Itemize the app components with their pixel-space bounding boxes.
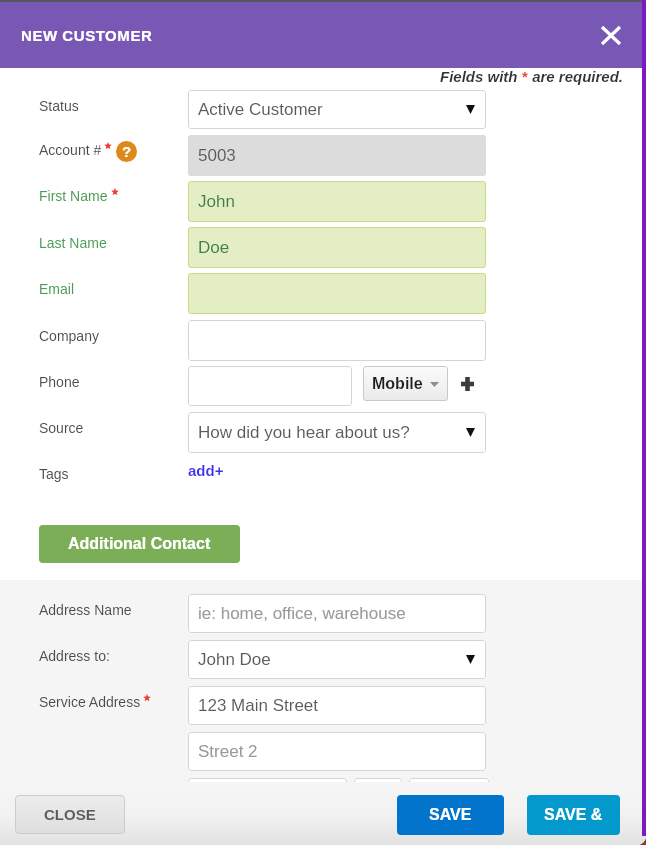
staticText: SAVE xyxy=(429,806,472,824)
staticText: NEW CUSTOMER xyxy=(21,27,153,44)
button[interactable]: John xyxy=(188,181,486,222)
button[interactable]: add+ xyxy=(188,462,224,479)
button[interactable]: SAVE xyxy=(397,795,504,835)
staticText: Status xyxy=(39,98,79,114)
button[interactable]: Additional Contact xyxy=(39,525,240,563)
button[interactable]: John Doe xyxy=(188,640,486,679)
staticText: Account # xyxy=(39,142,102,158)
staticText: SAVE & xyxy=(544,806,603,824)
staticText: 5003 xyxy=(198,146,236,165)
button[interactable] xyxy=(188,366,352,406)
staticText: * xyxy=(522,68,528,85)
staticText: First Name xyxy=(39,188,108,204)
button[interactable] xyxy=(188,320,486,361)
staticText: Phone xyxy=(39,374,80,390)
staticText: are required. xyxy=(528,68,624,85)
button[interactable] xyxy=(188,778,347,813)
button[interactable]: SAVE & xyxy=(527,795,620,835)
button[interactable] xyxy=(354,778,402,813)
staticText: CLOSE xyxy=(44,806,96,823)
button[interactable]: Help xyxy=(116,141,137,162)
staticText: Address to: xyxy=(39,648,110,664)
staticText: add+ xyxy=(188,462,224,479)
staticText: ie: home, office, warehouse xyxy=(198,604,406,623)
staticText: How did you hear about us? xyxy=(198,423,410,442)
staticText: John xyxy=(198,192,235,211)
staticText: Source xyxy=(39,420,84,436)
button[interactable]: Close xyxy=(602,27,620,44)
staticText: Active Customer xyxy=(198,100,323,119)
staticText: ? xyxy=(122,143,132,160)
button[interactable]: CLOSE xyxy=(15,795,125,834)
staticText: Mobile xyxy=(372,375,423,393)
button[interactable]: Active Customer xyxy=(188,90,486,129)
staticText: Service Address xyxy=(39,694,141,710)
staticText: 123 Main Street xyxy=(198,696,319,715)
button[interactable]: ie: home, office, warehouse xyxy=(188,594,486,633)
staticText: Fields with xyxy=(440,68,522,85)
button[interactable]: Add phone xyxy=(461,377,474,391)
staticText: Company xyxy=(39,328,99,344)
button[interactable]: 5003 xyxy=(188,135,486,176)
staticText: Address Name xyxy=(39,602,132,618)
button[interactable]: Street 2 xyxy=(188,732,486,771)
button[interactable]: Doe xyxy=(188,227,486,268)
button[interactable]: How did you hear about us? xyxy=(188,412,486,453)
button[interactable] xyxy=(188,273,486,314)
button[interactable]: 123 Main Street xyxy=(188,686,486,725)
staticText: Doe xyxy=(198,238,230,257)
staticText: Additional Contact xyxy=(68,535,211,553)
staticText: Email xyxy=(39,281,75,297)
staticText: Street 2 xyxy=(198,742,258,761)
button[interactable] xyxy=(409,778,489,813)
button[interactable]: Mobile xyxy=(363,366,448,401)
staticText: Last Name xyxy=(39,235,107,251)
staticText: John Doe xyxy=(198,650,271,669)
staticText: Tags xyxy=(39,466,69,482)
